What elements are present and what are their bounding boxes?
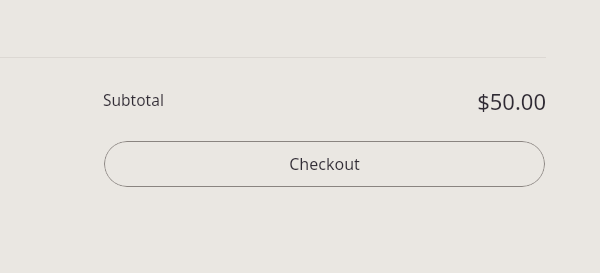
staticText: Subtotal bbox=[103, 89, 164, 110]
staticText: Checkout bbox=[289, 153, 360, 175]
staticText: $50.00 bbox=[477, 86, 546, 112]
button[interactable]: Checkout bbox=[104, 141, 545, 187]
